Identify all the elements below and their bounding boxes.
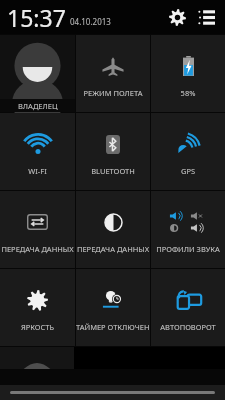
button[interactable]: WI-FI [0, 113, 75, 190]
staticText: РЕЖИМ ПОЛЕТА [76, 88, 150, 98]
button[interactable]: ПЕРЕДАЧА ДАННЫХ [76, 191, 150, 268]
staticText: 58% [151, 88, 225, 98]
staticText: 15:37 [7, 2, 66, 33]
staticText: ПРОФИЛИ ЗВУКА [151, 244, 225, 254]
button[interactable]: ПРОФИЛИ ЗВУКА [151, 191, 225, 268]
button[interactable]: АВТОПОВОРОТ [151, 269, 225, 346]
button[interactable]: ТАЙМЕР ОТКЛЮЧЕНИЯ [76, 269, 150, 346]
staticText: АВТОПОВОРОТ [151, 322, 225, 332]
button[interactable]: ЯРКОСТЬ [0, 269, 75, 346]
staticText: WI-FI [0, 166, 75, 176]
staticText: 04.10.2013 [70, 16, 111, 27]
staticText: ПЕРЕДАЧА ДАННЫХ [0, 244, 75, 254]
staticText: GPS [151, 166, 225, 176]
button[interactable]: 58% [151, 35, 225, 112]
button[interactable]: BLUETOOTH [76, 113, 150, 190]
staticText: ЯРКОСТЬ [0, 322, 75, 332]
button[interactable]: ПЕРЕДАЧА ДАННЫХ [0, 191, 75, 268]
button[interactable]: GPS [151, 113, 225, 190]
staticText: ПЕРЕДАЧА ДАННЫХ [76, 244, 150, 254]
staticText: ТАЙМЕР ОТКЛЮЧЕНИЯ [76, 322, 150, 332]
button[interactable]: Settings [165, 5, 189, 29]
staticText: BLUETOOTH [76, 166, 150, 176]
staticText: ВЛАДЕЛЕЦ [18, 101, 58, 111]
button[interactable]: ВЛАДЕЛЕЦ [0, 35, 75, 112]
button[interactable]: РЕЖИМ ПОЛЕТА [76, 35, 150, 112]
button[interactable]: Edit tiles [194, 5, 218, 29]
